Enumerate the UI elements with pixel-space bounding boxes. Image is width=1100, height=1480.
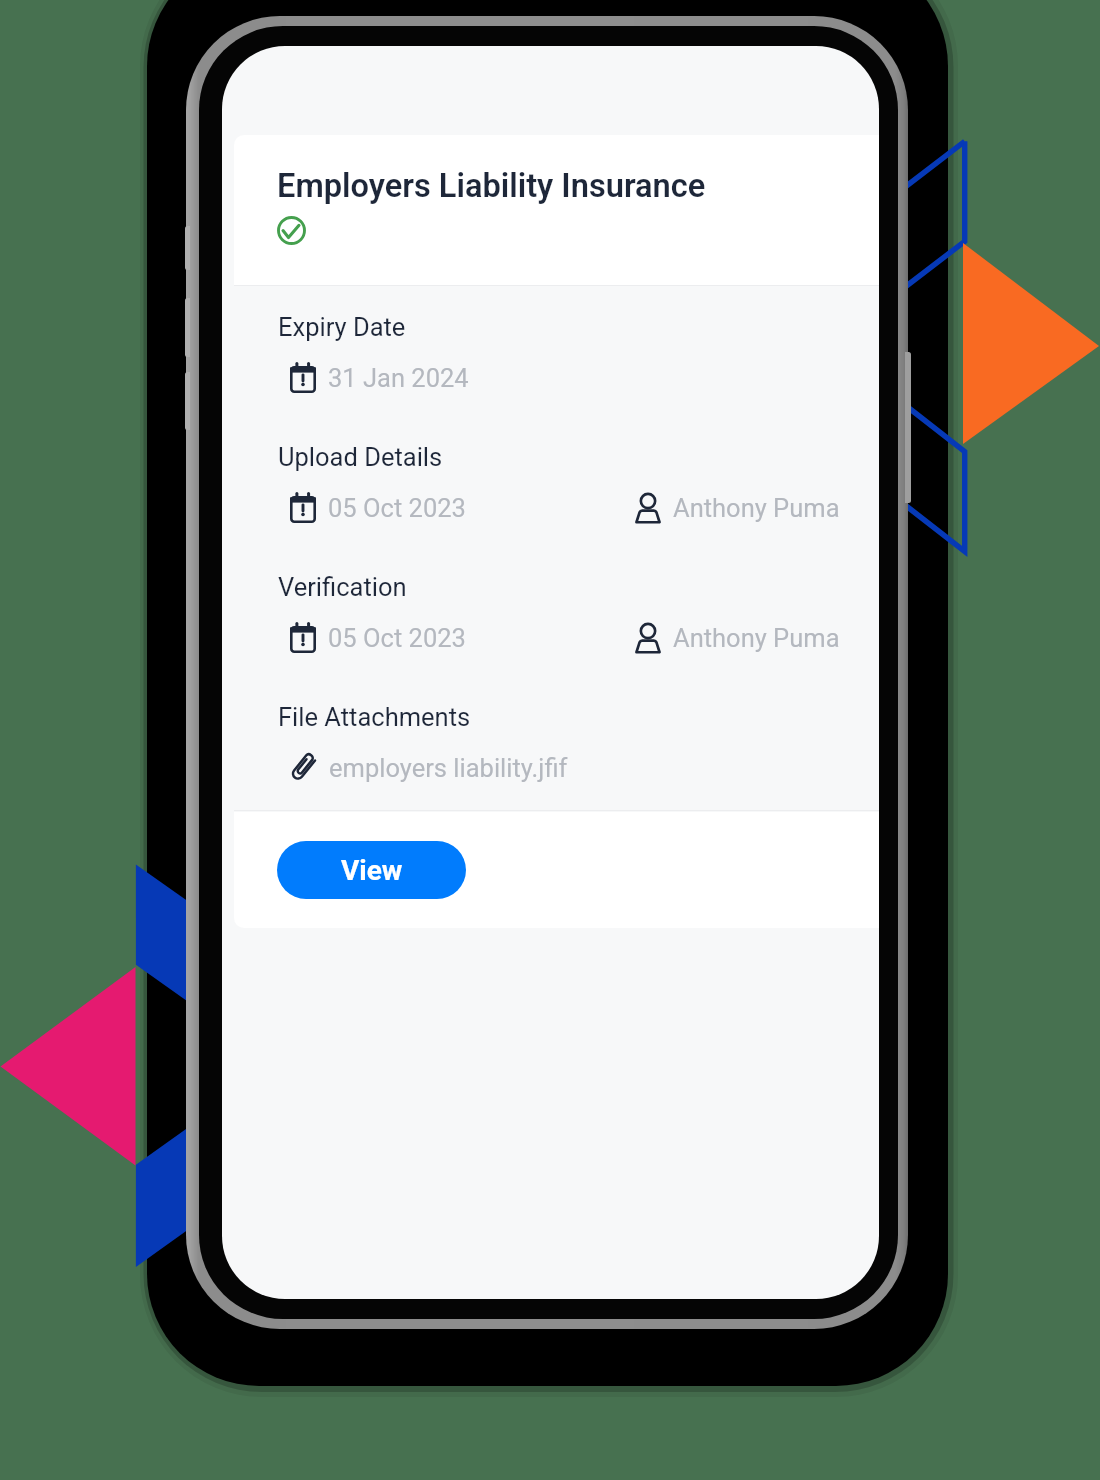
staticText: Employers Liability Insurance	[277, 167, 706, 205]
staticText: employers liability.jfif	[329, 753, 568, 783]
staticText: Upload Details	[278, 442, 443, 472]
staticText: Expiry Date	[278, 312, 406, 342]
staticText: Anthony Puma	[673, 623, 840, 653]
staticText: 05 Oct 2023	[328, 493, 466, 523]
staticText: 05 Oct 2023	[328, 623, 466, 653]
other: Verified	[277, 216, 306, 245]
button[interactable]: View	[277, 841, 466, 899]
button[interactable]: employers liability.jfif	[288, 749, 580, 787]
staticText: Verification	[278, 572, 407, 602]
staticText: 31 Jan 2024	[328, 363, 469, 393]
staticText: File Attachments	[278, 702, 471, 732]
staticText: View	[341, 854, 403, 887]
staticText: Anthony Puma	[673, 493, 840, 523]
